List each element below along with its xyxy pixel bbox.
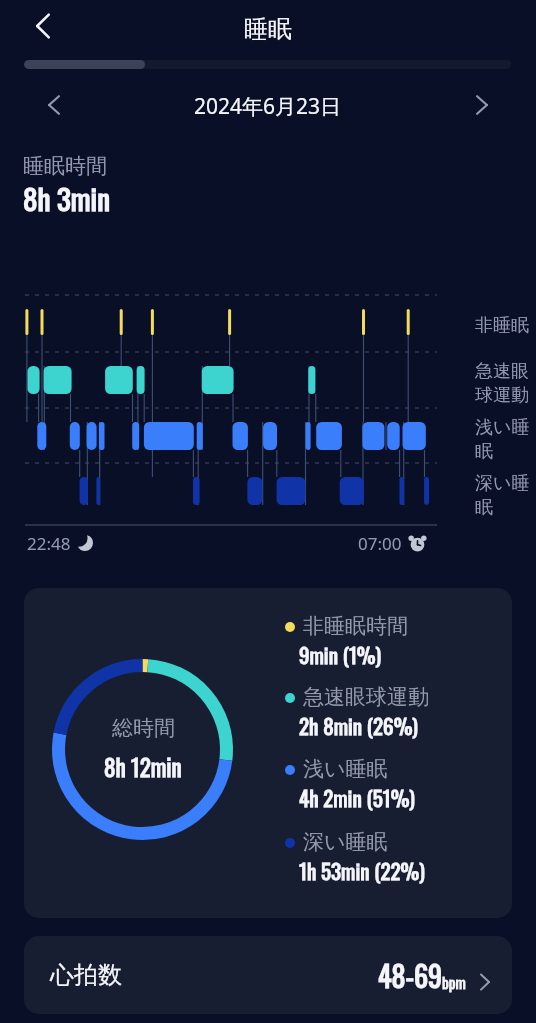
staticText: 睡眠 [244,14,292,44]
staticText: 総時間 [112,715,175,741]
button[interactable]: Back [19,2,67,50]
staticText: 8h 12min [104,750,182,784]
staticText: 急速眼球運動 [303,684,429,710]
button[interactable]: Next day [463,86,501,124]
staticText: 8h 3min [23,176,110,219]
staticText: 深い睡眠 [475,472,531,518]
staticText: 9min (1%) [299,639,382,670]
staticText: 深い睡眠 [303,829,388,855]
staticText: 浅い睡眠 [303,756,388,782]
staticText: 2024年6月23日 [194,92,342,121]
staticText: 心拍数 [50,960,122,990]
staticText: bpm [442,971,466,993]
button[interactable]: Previous day [35,86,73,124]
button[interactable]: 心拍数 [24,936,512,1014]
staticText: 浅い睡眠 [475,416,531,462]
staticText: 1h 53min (22%) [299,855,425,886]
staticText: 07:00 [358,532,402,555]
staticText: 急速眼球運動 [475,360,531,406]
staticText: 非睡眠時間 [303,613,408,639]
staticText: 非睡眠 [475,314,531,337]
staticText: 22:48 [27,532,71,555]
staticText: 48-69 [378,955,442,996]
staticText: 2h 8min (26%) [299,710,418,741]
staticText: 睡眠時間 [23,153,107,179]
staticText: 4h 2min (51%) [299,782,415,813]
